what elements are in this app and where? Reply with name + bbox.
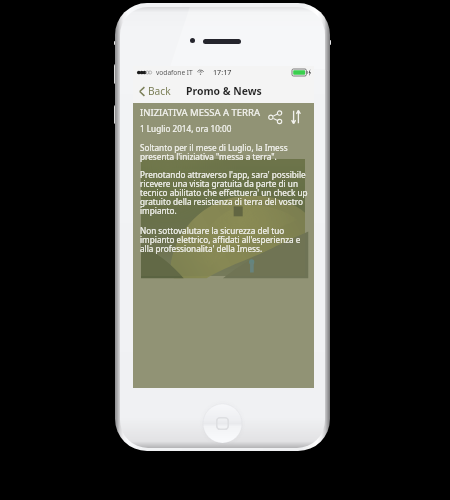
button[interactable]: Back bbox=[135, 79, 175, 103]
staticText: Prenotando attraverso l'app, sara' possi… bbox=[140, 169, 308, 217]
staticText: INIZIATIVA MESSA A TERRA bbox=[140, 106, 260, 119]
staticText: Non sottovalutare la sicurezza del tuo i… bbox=[140, 225, 308, 255]
staticText: Soltanto per il mese di Luglio, la Imess… bbox=[140, 142, 308, 163]
staticText: 1 Luglio 2014, ora 10:00 bbox=[140, 123, 232, 134]
staticText: vodafone IT bbox=[156, 68, 193, 77]
staticText: Back bbox=[148, 84, 171, 98]
button[interactable]: Sort order bbox=[286, 107, 306, 127]
staticText: 17:17 bbox=[213, 67, 232, 77]
staticText: Promo & News bbox=[186, 84, 262, 98]
button[interactable]: Share bbox=[264, 107, 286, 127]
